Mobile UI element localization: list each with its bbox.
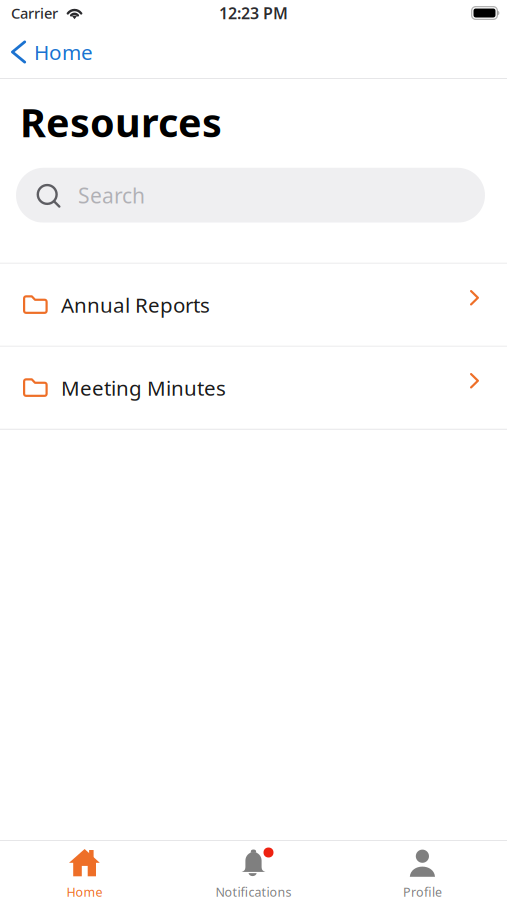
- staticText: Notifications: [215, 883, 291, 900]
- staticText: Profile: [403, 883, 442, 900]
- staticText: 12:23 PM: [219, 2, 288, 24]
- staticText: Carrier: [11, 3, 58, 23]
- button[interactable]: Home: [0, 841, 169, 900]
- button[interactable]: Meeting Minutes: [0, 347, 507, 429]
- button[interactable]: Home: [0, 26, 507, 78]
- button[interactable]: Profile: [338, 841, 507, 900]
- button[interactable]: Annual Reports: [0, 264, 507, 346]
- staticText: Home: [66, 883, 102, 900]
- staticText: Annual Reports: [61, 291, 210, 319]
- button[interactable]: Notifications: [169, 841, 338, 900]
- staticText: Search: [78, 181, 145, 210]
- staticText: Home: [34, 38, 93, 66]
- staticText: Meeting Minutes: [61, 374, 226, 402]
- staticText: Resources: [20, 95, 222, 149]
